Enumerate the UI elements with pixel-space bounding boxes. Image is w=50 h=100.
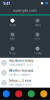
button[interactable]: Inbox — 3 new xyxy=(0,78,50,88)
staticText: Weather forecast xyxy=(9,69,33,72)
staticText: news.example.com xyxy=(9,63,32,67)
staticText: Shop xyxy=(9,51,16,55)
button[interactable]: Shop xyxy=(0,44,25,58)
staticText: Privacy xyxy=(33,51,41,55)
staticText: Mail xyxy=(10,37,15,41)
button[interactable]: Home xyxy=(0,16,25,30)
button[interactable]: App one xyxy=(0,88,12,100)
button[interactable]: App two xyxy=(12,88,25,100)
staticText: Top stories today xyxy=(9,59,33,62)
staticText: mail.example.com xyxy=(9,83,31,87)
staticText: Home xyxy=(8,23,16,27)
staticText: Info xyxy=(34,37,40,41)
button[interactable]: News xyxy=(25,16,50,30)
staticText: 9:41 xyxy=(3,0,10,6)
staticText: Inbox — 3 new xyxy=(9,79,31,82)
button[interactable]: Privacy xyxy=(25,44,50,58)
button[interactable]: App three xyxy=(25,88,37,100)
button[interactable]: App four xyxy=(37,88,50,100)
button[interactable]: Top stories today xyxy=(0,58,50,68)
button[interactable]: Info xyxy=(25,30,50,44)
staticText: weather.example xyxy=(9,73,31,77)
button[interactable]: Weather forecast xyxy=(0,68,50,78)
button[interactable]: Mail xyxy=(0,30,25,44)
staticText: News xyxy=(34,23,40,27)
staticText: example.com xyxy=(13,7,37,13)
